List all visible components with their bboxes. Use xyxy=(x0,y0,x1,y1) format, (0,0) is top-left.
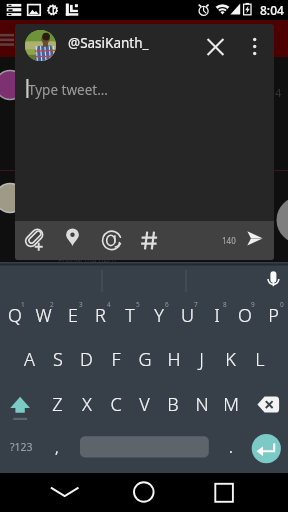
staticText: 8:04 xyxy=(260,2,284,18)
button[interactable]: Mention someone xyxy=(101,226,131,256)
staticText: R xyxy=(95,303,106,328)
button[interactable]: Y xyxy=(144,295,173,338)
staticText: N xyxy=(195,392,209,417)
button[interactable]: E xyxy=(58,295,87,338)
button[interactable]: J xyxy=(187,339,216,382)
staticText: C xyxy=(110,392,122,417)
staticText: Y xyxy=(154,303,164,328)
staticText: 2 xyxy=(50,300,54,309)
staticText: U xyxy=(181,303,194,328)
button[interactable]: V xyxy=(130,384,159,427)
button[interactable]: U xyxy=(173,295,202,338)
button[interactable]: Backspace xyxy=(245,382,288,425)
button[interactable]: F xyxy=(101,339,130,382)
staticText: Follow the herd xyxy=(58,255,117,266)
staticText: Z xyxy=(52,392,63,417)
button[interactable]: More options xyxy=(243,32,269,61)
button[interactable]: C xyxy=(101,384,130,427)
button[interactable]: G xyxy=(130,339,159,382)
staticText: 6 xyxy=(165,300,169,309)
button[interactable]: P xyxy=(259,295,288,338)
button[interactable]: O xyxy=(230,295,259,338)
button[interactable]: Add location xyxy=(62,228,84,250)
button[interactable]: M xyxy=(216,384,245,427)
staticText: O xyxy=(238,303,252,328)
button[interactable]: Attach media xyxy=(21,226,51,256)
staticText: J xyxy=(199,347,204,372)
button[interactable]: Send tweet xyxy=(241,227,265,251)
staticText: K xyxy=(225,347,236,372)
staticText: H xyxy=(167,347,181,372)
staticText: 8 xyxy=(223,300,227,309)
button[interactable]: D xyxy=(72,339,101,382)
staticText: G xyxy=(138,347,152,372)
button[interactable]: A xyxy=(15,339,44,382)
button[interactable]: I xyxy=(202,295,231,338)
button[interactable]: . xyxy=(219,434,243,460)
button[interactable]: R xyxy=(86,295,115,338)
staticText: 7 xyxy=(194,300,198,309)
staticText: ?123 xyxy=(10,440,33,454)
staticText: B xyxy=(167,392,179,417)
button[interactable]: N xyxy=(187,384,216,427)
button[interactable]: Shift xyxy=(0,382,43,425)
staticText: . xyxy=(229,438,233,457)
staticText: A xyxy=(24,347,35,372)
button[interactable]: Close xyxy=(201,32,230,61)
staticText: , xyxy=(55,438,59,457)
button[interactable]: B xyxy=(158,384,187,427)
button[interactable]: K xyxy=(216,339,245,382)
staticText: 5 xyxy=(136,300,140,309)
staticText: 4 xyxy=(275,85,282,100)
staticText: 140 xyxy=(222,235,236,246)
staticText: 9 xyxy=(251,300,255,309)
staticText: W xyxy=(35,303,52,328)
button[interactable]: Q xyxy=(0,295,29,338)
button[interactable]: Z xyxy=(43,384,72,427)
button[interactable]: S xyxy=(43,339,72,382)
staticText: D xyxy=(80,347,93,372)
staticText: E xyxy=(68,303,78,328)
button[interactable]: H xyxy=(159,339,188,382)
staticText: 0 xyxy=(280,300,284,309)
staticText: @SasiKanth_ xyxy=(68,34,149,52)
button[interactable]: Back xyxy=(45,477,85,509)
staticText: I xyxy=(214,303,220,328)
button[interactable]: T xyxy=(115,295,144,338)
button[interactable]: Space xyxy=(74,430,214,464)
staticText: 1 xyxy=(21,300,25,309)
button[interactable]: , xyxy=(45,434,69,460)
button[interactable]: Add hashtag xyxy=(135,226,164,255)
button[interactable]: Enter xyxy=(249,430,285,466)
staticText: V xyxy=(139,392,150,417)
staticText: Q xyxy=(8,303,22,328)
button[interactable]: Profile photo xyxy=(25,30,56,61)
staticText: S xyxy=(53,347,63,372)
staticText: F xyxy=(111,347,121,372)
staticText: P xyxy=(268,303,279,328)
staticText: M xyxy=(223,392,239,417)
button[interactable]: W xyxy=(29,295,58,338)
staticText: 3 xyxy=(79,300,83,309)
button[interactable]: X xyxy=(72,384,101,427)
button[interactable]: L xyxy=(245,339,274,382)
staticText: T xyxy=(125,303,135,328)
button[interactable]: Type tweet... xyxy=(28,81,108,99)
staticText: X xyxy=(82,392,92,417)
button[interactable]: Recent apps xyxy=(206,477,242,509)
staticText: L xyxy=(255,347,265,372)
button[interactable]: Home xyxy=(126,477,162,509)
button[interactable]: ?123 xyxy=(6,434,37,460)
staticText: 4 xyxy=(107,300,111,309)
